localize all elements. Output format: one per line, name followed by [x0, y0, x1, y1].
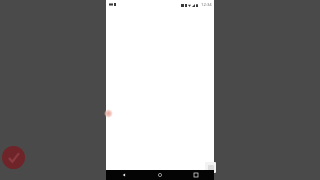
- button[interactable]: Home: [142, 170, 178, 180]
- button[interactable]: Recent apps: [178, 170, 214, 180]
- button[interactable]: Overlay control: [205, 162, 216, 173]
- button[interactable]: Back: [106, 170, 142, 180]
- staticText: 12:34: [201, 2, 212, 8]
